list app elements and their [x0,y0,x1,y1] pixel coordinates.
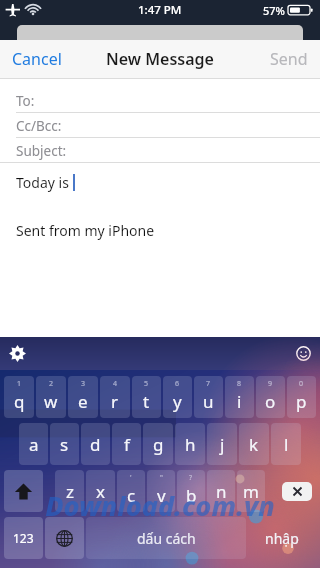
staticText: a [29,433,39,456]
button[interactable]: 3 [68,376,98,418]
button[interactable]: 0 [287,376,316,418]
button[interactable]: g [143,423,173,465]
staticText: d [90,433,101,456]
button[interactable]: k [239,423,269,465]
staticText: ? [189,473,193,483]
staticText: g [153,433,164,456]
staticText: dấu cách [137,529,196,548]
button[interactable]: 1 [4,376,34,418]
staticText: c [127,484,136,507]
staticText: 4 [113,379,118,389]
button[interactable]: Emoji [286,337,320,370]
staticText: u [203,390,214,413]
staticText: 1 [17,379,22,389]
button[interactable]: 6 [163,376,192,418]
staticText: 0 [299,379,304,389]
staticText: o [265,390,276,413]
staticText: l [284,433,289,456]
staticText: 3 [81,379,86,389]
staticText: p [296,390,307,413]
staticText: ' [130,473,132,483]
staticText: h [185,433,196,456]
staticText: New Message [106,48,214,70]
staticText: Download.com.vn [45,487,275,524]
button[interactable]: To: [0,89,320,112]
staticText: t [143,390,150,413]
button[interactable]: d [81,423,110,465]
button[interactable]: a [19,423,48,465]
button[interactable]: ? [177,470,205,512]
button[interactable]: j [207,423,237,465]
staticText: nhập [265,529,299,548]
button[interactable]: Subject: [0,139,320,162]
button[interactable]: z [55,470,84,512]
button[interactable]: h [175,423,205,465]
staticText: v [157,484,166,507]
staticText: n [216,480,227,503]
staticText: f [124,433,130,456]
button[interactable]: m [237,470,265,512]
staticText: Cc/Bcc: [16,117,62,135]
staticText: Cancel [12,48,62,70]
staticText: 2 [49,379,54,389]
button[interactable]: 2 [36,376,66,418]
staticText: r [111,390,119,413]
staticText: z [66,480,74,503]
staticText: w [44,390,58,413]
staticText: Send [270,48,308,70]
button[interactable]: 7 [194,376,223,418]
staticText: 123 [13,530,34,546]
staticText: 5 [144,379,149,389]
staticText: y [173,390,182,413]
button[interactable]: Cc/Bcc: [0,114,320,137]
button[interactable]: 4 [100,376,130,418]
button[interactable]: nhập [248,517,316,559]
staticText: s [60,433,69,456]
button[interactable]: f [112,423,141,465]
staticText: 8 [237,379,242,389]
button[interactable]: Cancel [0,42,74,76]
staticText: i [237,390,242,413]
staticText: j [220,433,225,456]
button[interactable]: Shift [4,470,43,512]
button[interactable]: Delete [282,482,312,501]
staticText: Subject: [16,142,67,160]
staticText: To: [16,92,35,110]
button[interactable]: l [271,423,301,465]
button[interactable]: Keyboard settings [0,337,34,370]
staticText: " [160,473,163,483]
button[interactable]: 9 [256,376,285,418]
staticText: k [249,433,259,456]
button[interactable]: dấu cách [86,517,246,559]
staticText: x [96,480,105,503]
staticText: 57% [263,3,285,18]
button[interactable]: Send [258,42,320,76]
button[interactable]: n [207,470,235,512]
staticText: 1:47 PM [138,2,182,18]
button[interactable]: ' [117,470,145,512]
staticText: Sent from my iPhone [16,221,155,240]
staticText: q [14,390,25,413]
button[interactable]: 5 [132,376,161,418]
button[interactable]: x [86,470,115,512]
staticText: e [78,390,88,413]
button[interactable]: " [147,470,175,512]
staticText: 7 [206,379,211,389]
staticText: m [243,480,259,503]
button[interactable]: s [50,423,79,465]
button[interactable]: 123 [4,517,43,559]
button[interactable]: 8 [225,376,254,418]
button[interactable]: Change keyboard language [45,517,84,559]
staticText: 6 [175,379,180,389]
staticText: Today is [16,173,73,192]
staticText: 9 [268,379,273,389]
staticText: b [186,484,197,507]
